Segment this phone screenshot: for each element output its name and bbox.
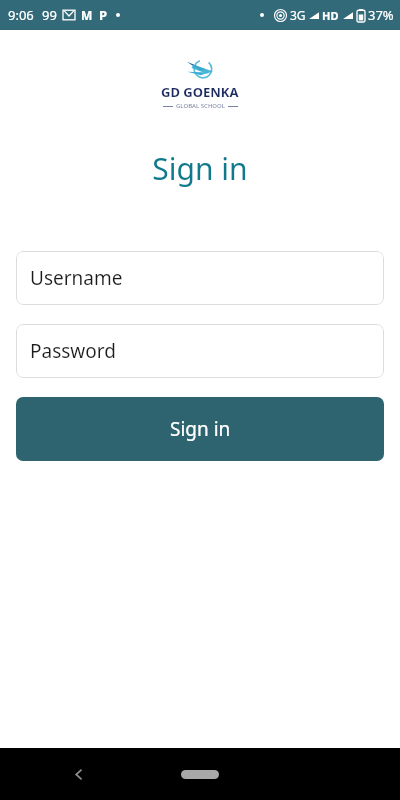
button[interactable]: Home — [174, 759, 226, 789]
staticText: GD GOENKA — [161, 83, 239, 101]
staticText: Username — [30, 265, 123, 291]
button[interactable]: Back — [62, 757, 96, 791]
staticText: 9:06 — [8, 6, 34, 24]
staticText: Sign in — [0, 148, 400, 189]
staticText: 37% — [368, 6, 394, 24]
button[interactable]: Sign in — [16, 397, 384, 461]
staticText: GLOBAL SCHOOL — [176, 102, 225, 110]
staticText: 3G — [290, 7, 306, 23]
staticText: HD — [322, 8, 339, 23]
button[interactable]: Password — [16, 324, 384, 378]
staticText: 99 — [42, 6, 57, 24]
staticText: M — [81, 7, 93, 23]
staticText: Sign in — [170, 416, 231, 442]
staticText: P — [99, 6, 108, 24]
staticText: Password — [30, 338, 116, 364]
button[interactable]: Username — [16, 251, 384, 305]
